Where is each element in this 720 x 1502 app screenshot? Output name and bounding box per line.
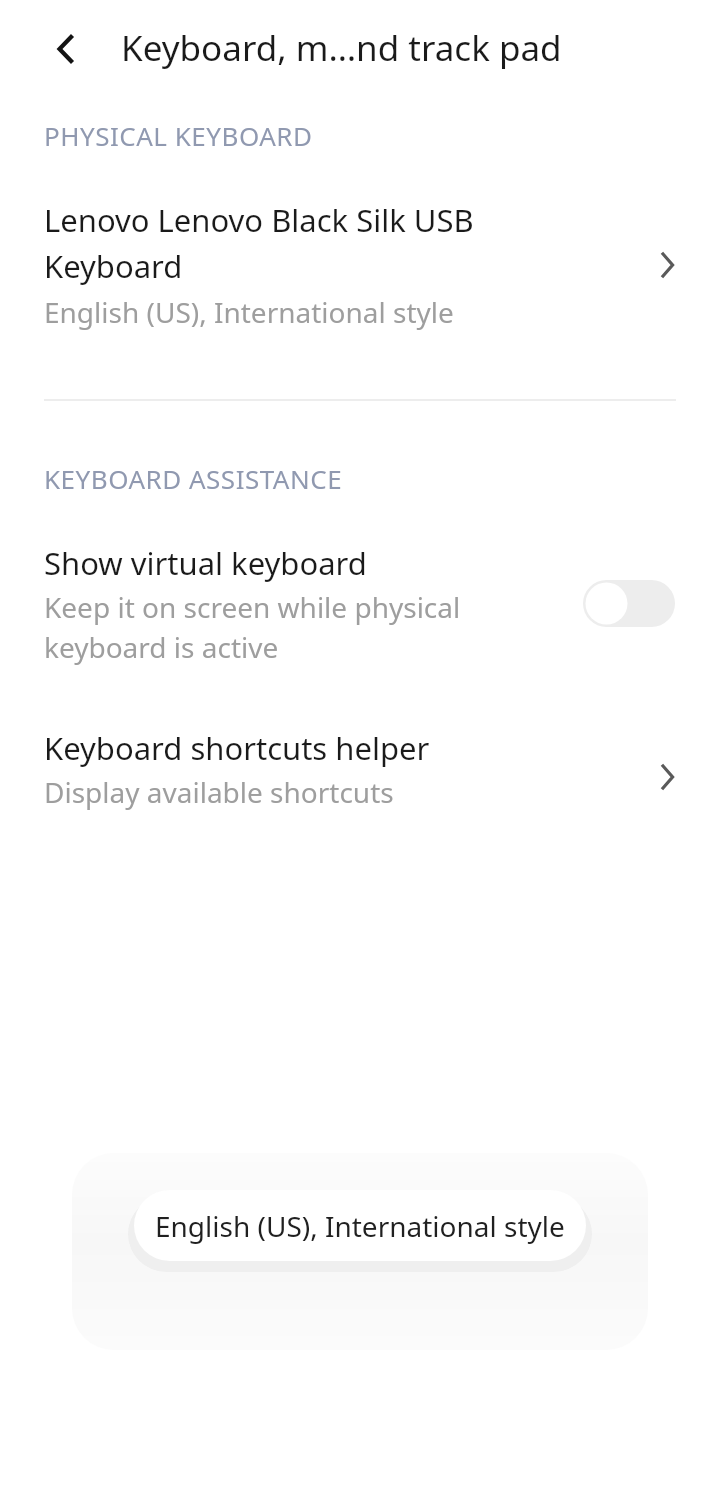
button[interactable]: Show virtual keyboard toggle	[583, 580, 675, 627]
staticText: Display available shortcuts	[44, 773, 394, 811]
staticText: KEYBOARD ASSISTANCE	[44, 461, 343, 496]
button[interactable]: Show virtual keyboard	[0, 528, 720, 693]
staticText: Keyboard shortcuts helper	[44, 727, 430, 769]
staticText: PHYSICAL KEYBOARD	[44, 118, 313, 153]
staticText: Show virtual keyboard	[44, 542, 367, 584]
button[interactable]: Back	[38, 22, 92, 76]
button[interactable]: Keyboard shortcuts helper	[0, 715, 720, 835]
staticText: Keep it on screen while physical keyboar…	[44, 588, 484, 667]
staticText: English (US), International style	[44, 293, 454, 331]
button[interactable]: English (US), International style	[134, 1190, 586, 1261]
staticText: English (US), International style	[155, 1207, 565, 1245]
staticText: Lenovo Lenovo Black Silk USB Keyboard	[44, 199, 604, 287]
button[interactable]: Lenovo Lenovo Black Silk USB Keyboard	[0, 185, 720, 345]
staticText: Keyboard, m…nd track pad	[121, 24, 661, 72]
